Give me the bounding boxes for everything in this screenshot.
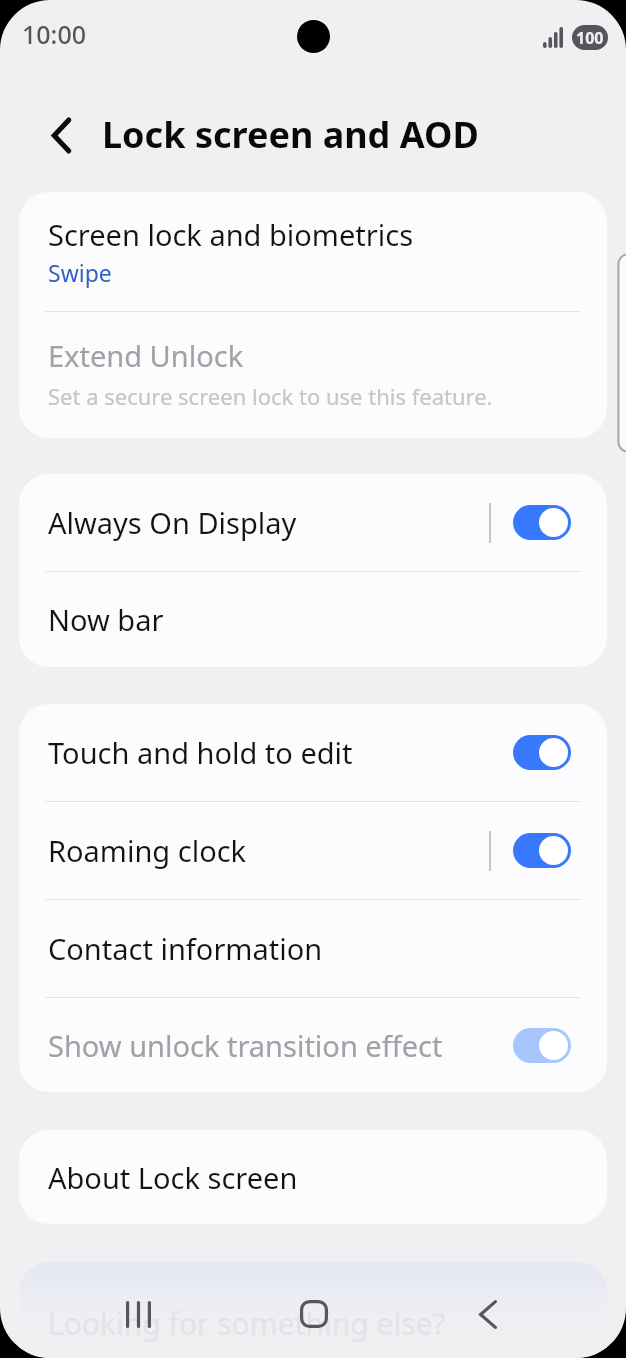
button[interactable]: Show unlock transition effect — [19, 998, 607, 1092]
staticText: Screen lock and biometrics — [48, 215, 414, 254]
button[interactable]: Roaming clock — [19, 802, 607, 899]
button[interactable]: Home — [286, 1286, 342, 1342]
staticText: Now bar — [48, 600, 164, 639]
button[interactable]: Back — [460, 1286, 516, 1342]
staticText: 10:00 — [22, 17, 87, 51]
button[interactable]: Touch and hold to edit — [19, 704, 607, 801]
staticText: Lock screen and AOD — [102, 110, 479, 159]
staticText: Touch and hold to edit — [48, 733, 513, 772]
button[interactable]: Screen lock and biometrics — [19, 192, 607, 311]
staticText: Roaming clock — [48, 831, 489, 870]
button[interactable]: Looking for something else? — [19, 1262, 607, 1358]
button[interactable]: Roaming clock — [513, 833, 571, 868]
staticText: Show unlock transition effect — [48, 1026, 513, 1065]
staticText: Always On Display — [48, 503, 489, 542]
button[interactable]: Now bar — [19, 572, 607, 667]
button[interactable]: Always On Display — [513, 505, 571, 540]
staticText: Set a secure screen lock to use this fea… — [48, 381, 493, 411]
button[interactable]: Contact information — [19, 900, 607, 997]
staticText: About Lock screen — [48, 1158, 298, 1197]
button[interactable]: Recent apps — [110, 1286, 166, 1342]
button[interactable]: Extend Unlock — [19, 312, 607, 438]
button[interactable]: Show unlock transition effect — [513, 1028, 571, 1063]
staticText: Contact information — [48, 929, 323, 968]
staticText: Extend Unlock — [48, 336, 244, 375]
staticText: 100 — [576, 27, 604, 49]
button[interactable]: About Lock screen — [19, 1130, 607, 1224]
button[interactable]: Back — [36, 110, 86, 160]
staticText: Swipe — [48, 257, 112, 288]
staticText: Looking for something else? — [48, 1303, 446, 1344]
button[interactable]: Touch and hold to edit — [513, 735, 571, 770]
button[interactable]: Always On Display — [19, 474, 607, 571]
